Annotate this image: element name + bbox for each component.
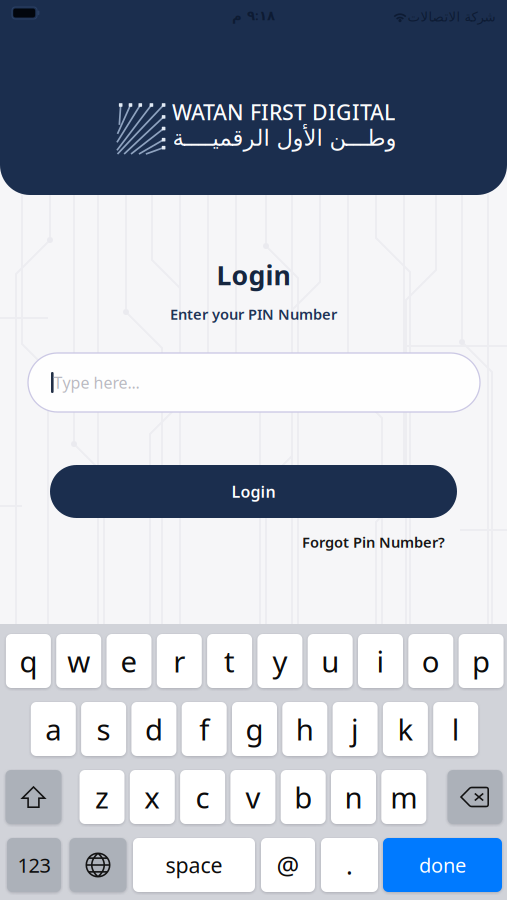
button[interactable]: c: [180, 770, 225, 824]
staticText: k: [397, 709, 413, 748]
staticText: o: [422, 641, 440, 680]
staticText: .: [346, 848, 353, 882]
button[interactable]: o: [408, 634, 453, 688]
button[interactable]: k: [383, 702, 428, 756]
button[interactable]: w: [56, 634, 101, 688]
button[interactable]: g: [232, 702, 277, 756]
button[interactable]: r: [157, 634, 202, 688]
staticText: y: [272, 641, 287, 680]
staticText: b: [294, 777, 312, 816]
staticText: r: [173, 641, 185, 680]
button[interactable]: s: [81, 702, 126, 756]
staticText: Login: [216, 257, 290, 293]
button[interactable]: a: [31, 702, 76, 756]
staticText: q: [19, 641, 37, 680]
staticText: l: [452, 709, 460, 748]
staticText: z: [95, 777, 109, 816]
staticText: 123: [17, 852, 50, 878]
staticText: v: [245, 777, 260, 816]
button[interactable]: n: [331, 770, 376, 824]
button[interactable]: u: [308, 634, 353, 688]
button[interactable]: Next keyboard: [69, 838, 126, 892]
button[interactable]: @: [261, 838, 315, 892]
button[interactable]: x: [130, 770, 175, 824]
staticText: ٩:١٨ م: [231, 6, 274, 24]
staticText: Enter your PIN Number: [170, 304, 337, 324]
button[interactable]: Forgot Pin Number?: [285, 532, 445, 552]
staticText: a: [45, 709, 61, 748]
button[interactable]: z: [79, 770, 124, 824]
button[interactable]: Delete: [447, 770, 502, 824]
button[interactable]: q: [6, 634, 51, 688]
staticText: x: [144, 777, 160, 816]
button[interactable]: v: [230, 770, 275, 824]
button[interactable]: Login: [50, 465, 457, 518]
button[interactable]: p: [459, 634, 504, 688]
staticText: WATAN FIRST DIGITAL: [172, 98, 395, 126]
button[interactable]: 123: [7, 838, 61, 892]
button[interactable]: e: [106, 634, 151, 688]
button[interactable]: j: [333, 702, 378, 756]
staticText: n: [344, 777, 362, 816]
button[interactable]: y: [257, 634, 302, 688]
staticText: w: [67, 641, 90, 680]
button[interactable]: t: [207, 634, 252, 688]
staticText: p: [472, 641, 490, 680]
staticText: j: [351, 709, 359, 748]
staticText: d: [145, 709, 163, 748]
staticText: done: [419, 852, 466, 878]
staticText: g: [245, 709, 263, 748]
button[interactable]: f: [182, 702, 227, 756]
staticText: f: [199, 709, 209, 748]
staticText: i: [376, 641, 384, 680]
staticText: @: [276, 848, 299, 882]
staticText: h: [296, 709, 314, 748]
button[interactable]: Shift: [5, 770, 61, 824]
button[interactable]: .: [321, 838, 378, 892]
staticText: c: [196, 777, 210, 816]
staticText: Forgot Pin Number?: [302, 532, 445, 552]
button[interactable]: d: [131, 702, 176, 756]
staticText: وطـــن الأول الرقميــــة: [172, 125, 396, 151]
button[interactable]: b: [281, 770, 326, 824]
button[interactable]: space: [133, 838, 255, 892]
button[interactable]: m: [381, 770, 426, 824]
staticText: t: [224, 641, 235, 680]
staticText: u: [321, 641, 339, 680]
staticText: s: [97, 709, 111, 748]
staticText: شركة الاتصالات: [407, 9, 495, 24]
button[interactable]: h: [282, 702, 327, 756]
staticText: Type here...: [54, 372, 140, 393]
button[interactable]: l: [433, 702, 478, 756]
staticText: m: [390, 777, 417, 816]
button[interactable]: i: [358, 634, 403, 688]
button[interactable]: done: [383, 838, 502, 892]
staticText: Login: [231, 481, 275, 502]
staticText: space: [165, 851, 222, 879]
staticText: e: [120, 641, 137, 680]
